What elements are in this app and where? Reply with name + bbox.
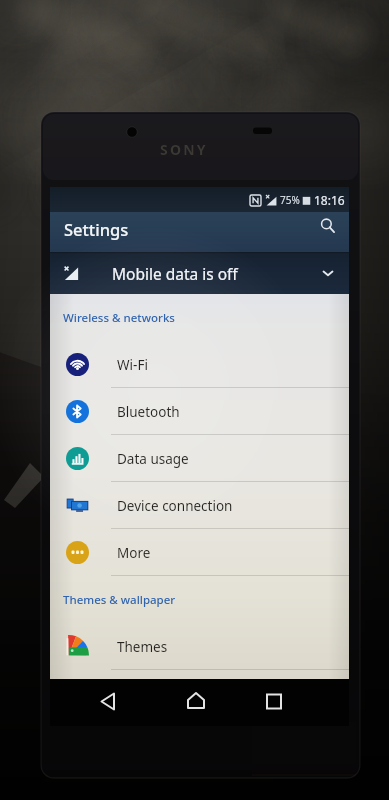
button[interactable]: Themes (50, 623, 349, 670)
button[interactable]: Home (176, 679, 216, 723)
staticText: Bluetooth (117, 403, 180, 421)
button[interactable]: Bluetooth (50, 388, 349, 435)
button[interactable]: Mobile data is off (50, 252, 349, 294)
button[interactable]: Wi-Fi (50, 341, 349, 388)
button[interactable]: Search (311, 209, 345, 243)
button[interactable]: Data usage (50, 435, 349, 482)
staticText: More (117, 544, 151, 562)
button[interactable]: Recent apps (254, 679, 294, 723)
staticText: Mobile data is off (112, 263, 238, 284)
button[interactable]: Back (89, 679, 129, 723)
staticText: 18:16 (314, 192, 345, 208)
button[interactable]: More (50, 529, 349, 576)
button[interactable]: Device connection (50, 482, 349, 529)
staticText: Device connection (117, 497, 233, 515)
staticText: Themes (117, 638, 168, 656)
staticText: 75% (280, 193, 300, 207)
staticText: Data usage (117, 450, 189, 468)
staticText: Wi-Fi (117, 356, 148, 374)
staticText: SONY (160, 140, 208, 159)
staticText: Themes & wallpaper (63, 592, 176, 608)
staticText: Settings (64, 218, 129, 240)
button[interactable]: Expand (311, 256, 345, 290)
button[interactable]: Settings (50, 212, 349, 252)
staticText: Wireless & networks (63, 310, 175, 326)
